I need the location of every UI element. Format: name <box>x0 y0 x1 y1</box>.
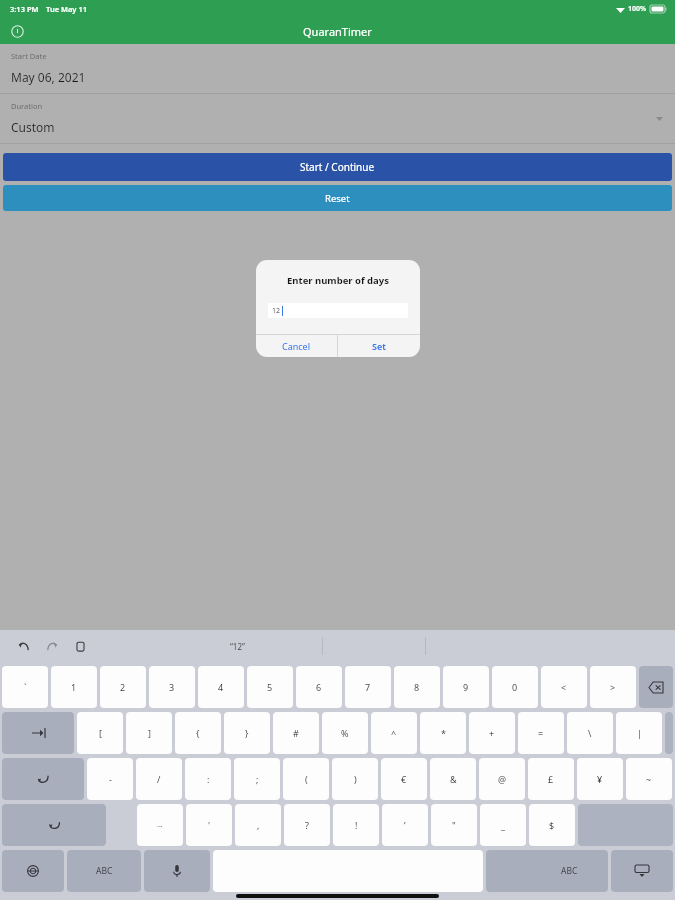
staticText: 9 <box>463 681 469 693</box>
staticText: 7 <box>365 681 371 693</box>
staticText: " <box>452 819 456 831</box>
button[interactable]: ; <box>234 758 280 800</box>
button[interactable]: $ <box>529 804 575 846</box>
button[interactable]: ~ <box>626 758 672 800</box>
button[interactable]: 6 <box>296 666 342 708</box>
button[interactable]: Info <box>6 20 28 42</box>
button[interactable]: ABC <box>486 850 608 892</box>
button[interactable]: Tab <box>2 712 74 754</box>
staticText: ] <box>148 727 151 739</box>
staticText: ! <box>355 819 358 831</box>
button[interactable]: Redo <box>42 636 62 656</box>
button[interactable]: | <box>616 712 662 754</box>
button[interactable]: ) <box>332 758 378 800</box>
button[interactable]: - <box>87 758 133 800</box>
button[interactable]: , <box>235 804 281 846</box>
button[interactable]: Change language <box>2 850 64 892</box>
staticText: ` <box>24 681 27 693</box>
button[interactable]: 3 <box>149 666 195 708</box>
staticText: Enter number of days <box>256 274 420 287</box>
staticText: 0 <box>512 681 518 693</box>
button[interactable]: > <box>590 666 636 708</box>
staticText: & <box>450 773 457 785</box>
staticText: % <box>341 727 349 739</box>
button[interactable]: 8 <box>394 666 440 708</box>
staticText: 4 <box>218 681 224 693</box>
button[interactable]: ’ <box>382 804 428 846</box>
button[interactable]: ABC <box>67 850 141 892</box>
button[interactable]: 1 <box>51 666 97 708</box>
button[interactable]: 2 <box>100 666 146 708</box>
button[interactable]: ] <box>126 712 172 754</box>
staticText: $ <box>549 819 555 831</box>
button[interactable]: { <box>175 712 221 754</box>
button[interactable]: ... <box>137 804 183 846</box>
staticText: , <box>257 819 260 831</box>
button[interactable]: \ <box>567 712 613 754</box>
button[interactable]: 9 <box>443 666 489 708</box>
button[interactable]: " <box>431 804 477 846</box>
button[interactable]: ¥ <box>577 758 623 800</box>
button[interactable]: Hide keyboard <box>611 850 673 892</box>
button[interactable]: 7 <box>345 666 391 708</box>
button[interactable]: = <box>518 712 564 754</box>
staticText: ~ <box>646 773 652 785</box>
button[interactable]: ^ <box>371 712 417 754</box>
button[interactable]: Voice input <box>144 850 210 892</box>
button[interactable]: 4 <box>198 666 244 708</box>
button[interactable]: Caps lock <box>2 758 84 800</box>
button[interactable]: * <box>420 712 466 754</box>
staticText: ( <box>305 773 308 785</box>
staticText: ABC <box>561 865 578 877</box>
button[interactable]: ` <box>2 666 48 708</box>
button[interactable]: Shift <box>2 804 106 846</box>
staticText: | <box>637 727 642 739</box>
staticText: _ <box>501 819 505 831</box>
button[interactable]: < <box>541 666 587 708</box>
button[interactable]: ' <box>186 804 232 846</box>
button[interactable]: 5 <box>247 666 293 708</box>
button[interactable]: Set <box>338 335 420 357</box>
button[interactable]: “12” <box>230 641 245 652</box>
button[interactable]: [ <box>77 712 123 754</box>
button[interactable]: _ <box>480 804 526 846</box>
button[interactable]: } <box>224 712 270 754</box>
staticText: [ <box>99 727 102 739</box>
staticText: 2 <box>120 681 126 693</box>
button[interactable]: £ <box>528 758 574 800</box>
button[interactable]: Backspace <box>639 666 673 708</box>
button[interactable]: ? <box>284 804 330 846</box>
button[interactable]: 12 <box>268 303 408 318</box>
button[interactable]: & <box>430 758 476 800</box>
button[interactable]: Start / Continue <box>3 153 672 181</box>
staticText: 6 <box>316 681 322 693</box>
button[interactable]: Undo <box>14 636 34 656</box>
button[interactable]: ( <box>283 758 329 800</box>
button[interactable]: # <box>273 712 319 754</box>
staticText: # <box>293 727 299 739</box>
staticText: £ <box>548 773 554 785</box>
button[interactable]: / <box>136 758 182 800</box>
staticText: 3:13 PM <box>10 4 39 14</box>
button[interactable]: % <box>322 712 368 754</box>
button[interactable]: Paste <box>70 636 90 656</box>
button[interactable]: : <box>185 758 231 800</box>
staticText: ... <box>157 820 163 830</box>
button[interactable]: Reset <box>3 185 672 211</box>
staticText: * <box>441 727 446 739</box>
button[interactable]: Cancel <box>256 335 337 357</box>
staticText: 12 <box>272 306 281 316</box>
staticText: Set <box>372 340 386 352</box>
staticText: < <box>561 681 567 693</box>
button[interactable]: @ <box>479 758 525 800</box>
button[interactable]: € <box>381 758 427 800</box>
button[interactable]: 0 <box>492 666 538 708</box>
button[interactable]: Duration <box>0 94 675 143</box>
button[interactable]: ! <box>333 804 379 846</box>
staticText: ' <box>208 819 211 831</box>
button[interactable]: + <box>469 712 515 754</box>
staticText: : <box>207 773 210 785</box>
button[interactable]: More <box>665 712 673 754</box>
